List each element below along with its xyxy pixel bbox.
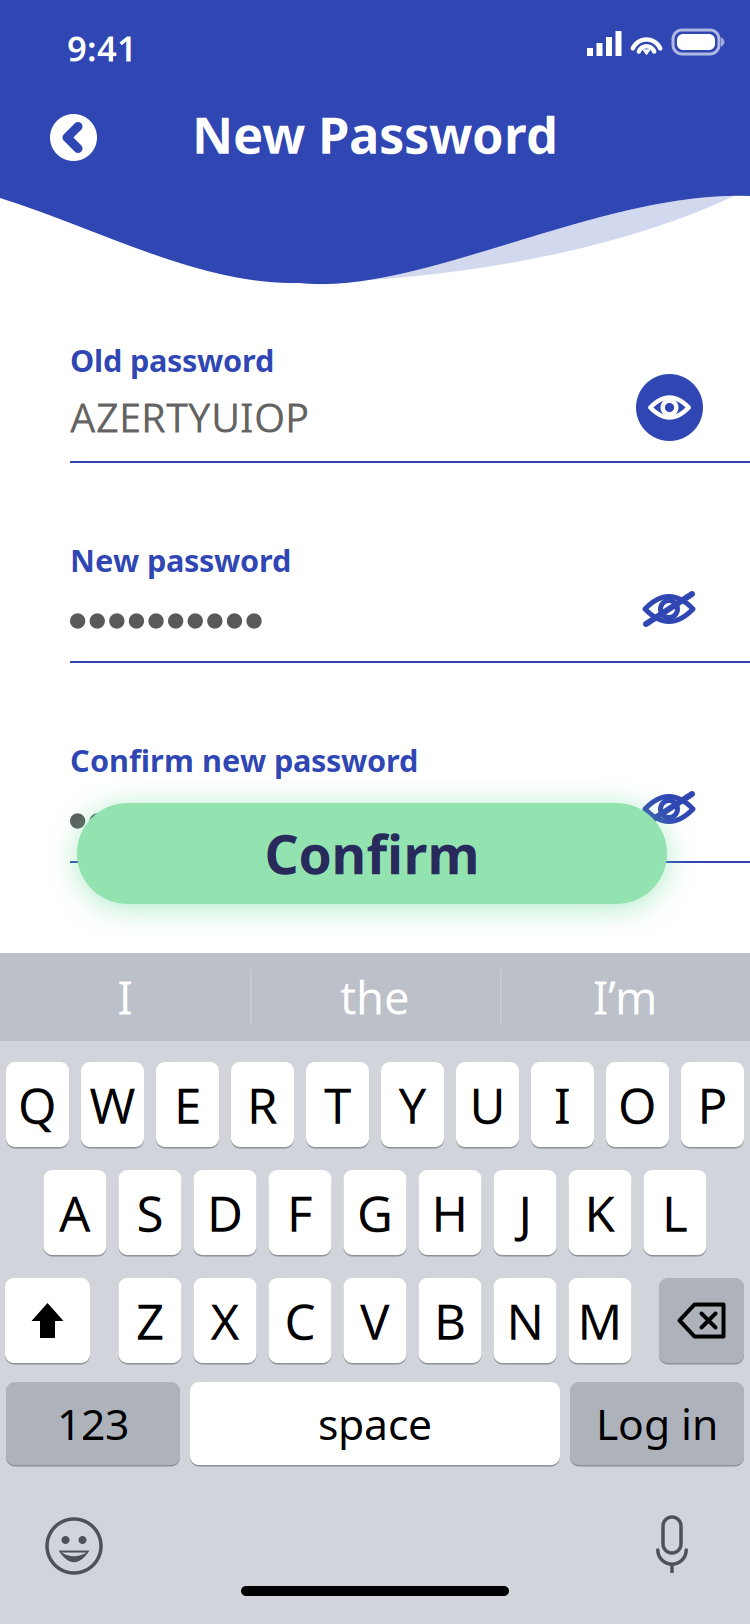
button[interactable]: Shift bbox=[5, 1278, 90, 1363]
button[interactable]: K bbox=[568, 1170, 631, 1255]
button[interactable]: M bbox=[568, 1278, 631, 1363]
button[interactable]: I bbox=[0, 953, 250, 1041]
button[interactable]: P bbox=[681, 1062, 744, 1147]
button[interactable]: 123 bbox=[6, 1382, 180, 1465]
button[interactable]: A bbox=[43, 1170, 106, 1255]
staticText: P bbox=[697, 1072, 727, 1137]
staticText: Y bbox=[398, 1072, 426, 1137]
staticText: I’m bbox=[593, 967, 657, 1027]
staticText: F bbox=[287, 1180, 313, 1245]
staticText: Confirm new password bbox=[70, 740, 418, 780]
button[interactable]: J bbox=[493, 1170, 556, 1255]
button[interactable]: I bbox=[531, 1062, 594, 1147]
button[interactable]: O bbox=[606, 1062, 669, 1147]
button[interactable]: X bbox=[193, 1278, 256, 1363]
button[interactable]: Dictation bbox=[655, 1511, 689, 1573]
staticText: W bbox=[89, 1072, 135, 1137]
button[interactable]: B bbox=[418, 1278, 481, 1363]
staticText: V bbox=[360, 1288, 390, 1353]
button[interactable]: Q bbox=[6, 1062, 69, 1147]
staticText: L bbox=[662, 1180, 688, 1245]
staticText: D bbox=[207, 1180, 243, 1245]
button[interactable]: N bbox=[493, 1278, 556, 1363]
button[interactable]: Hide confirm password bbox=[632, 781, 706, 837]
button[interactable]: C bbox=[268, 1278, 331, 1363]
button[interactable]: Delete bbox=[659, 1278, 744, 1363]
button[interactable]: V bbox=[343, 1278, 406, 1363]
staticText: 123 bbox=[57, 1395, 129, 1452]
button[interactable]: W bbox=[81, 1062, 144, 1147]
staticText: G bbox=[357, 1180, 393, 1245]
staticText: T bbox=[324, 1072, 351, 1137]
staticText: New password bbox=[70, 540, 291, 580]
staticText: M bbox=[577, 1288, 622, 1353]
staticText: H bbox=[431, 1180, 468, 1245]
button[interactable]: T bbox=[306, 1062, 369, 1147]
button[interactable]: U bbox=[456, 1062, 519, 1147]
button[interactable]: the bbox=[250, 953, 500, 1041]
button[interactable]: Hide new password bbox=[632, 581, 706, 637]
button[interactable]: space bbox=[190, 1382, 560, 1465]
button[interactable]: Show old password bbox=[636, 374, 703, 441]
staticText: Old password bbox=[70, 340, 274, 380]
button[interactable]: Y bbox=[381, 1062, 444, 1147]
button[interactable]: I’m bbox=[500, 953, 750, 1041]
staticText: U bbox=[469, 1072, 505, 1137]
staticText: K bbox=[584, 1180, 615, 1245]
button[interactable]: Confirm bbox=[77, 803, 667, 904]
staticText: Z bbox=[136, 1288, 164, 1353]
staticText: C bbox=[284, 1288, 315, 1353]
button[interactable]: L bbox=[643, 1170, 706, 1255]
staticText: Confirm bbox=[264, 818, 479, 889]
staticText: AZERTYUIOP bbox=[70, 390, 309, 443]
staticText: New Password bbox=[192, 100, 558, 168]
staticText: O bbox=[618, 1072, 657, 1137]
button[interactable]: Back bbox=[50, 114, 97, 161]
button[interactable]: D bbox=[193, 1170, 256, 1255]
staticText: the bbox=[340, 967, 410, 1027]
button[interactable]: S bbox=[118, 1170, 181, 1255]
button[interactable]: Z bbox=[118, 1278, 181, 1363]
button[interactable]: Emoji keyboard bbox=[47, 1519, 101, 1573]
button[interactable]: H bbox=[418, 1170, 481, 1255]
staticText: 9:41 bbox=[67, 25, 137, 71]
button[interactable]: Log in bbox=[570, 1382, 744, 1465]
button[interactable]: E bbox=[156, 1062, 219, 1147]
staticText: R bbox=[247, 1072, 278, 1137]
staticText: J bbox=[518, 1180, 531, 1245]
staticText: E bbox=[174, 1072, 201, 1137]
button[interactable]: R bbox=[231, 1062, 294, 1147]
staticText: A bbox=[59, 1180, 91, 1245]
staticText: X bbox=[210, 1288, 239, 1353]
staticText: Q bbox=[18, 1072, 57, 1137]
staticText: S bbox=[136, 1180, 163, 1245]
staticText: N bbox=[506, 1288, 543, 1353]
button[interactable]: F bbox=[268, 1170, 331, 1255]
staticText: space bbox=[318, 1395, 432, 1452]
staticText: I bbox=[117, 967, 132, 1027]
staticText: I bbox=[554, 1072, 571, 1137]
button[interactable]: G bbox=[343, 1170, 406, 1255]
staticText: B bbox=[434, 1288, 466, 1353]
staticText: Log in bbox=[596, 1395, 718, 1452]
